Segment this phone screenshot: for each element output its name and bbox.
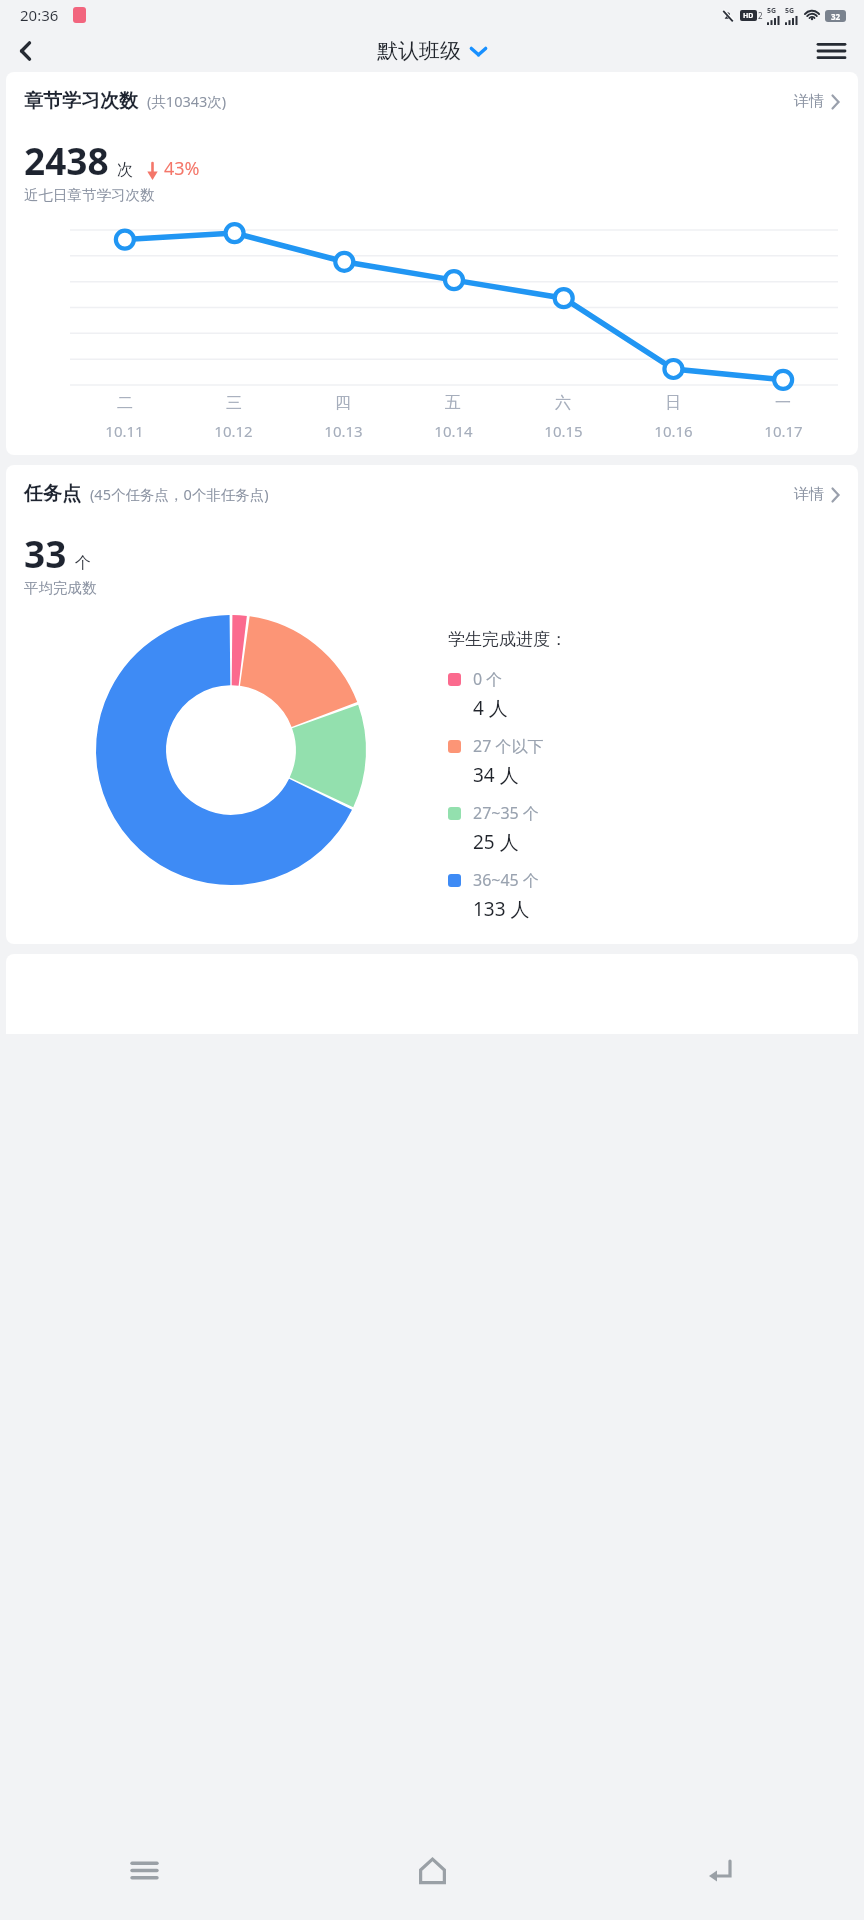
- staticText: 近七日章节学习次数: [24, 186, 155, 204]
- button[interactable]: 0 个: [448, 668, 508, 721]
- button[interactable]: Back: [4, 30, 48, 72]
- staticText: HD: [743, 11, 754, 21]
- staticText: 32: [831, 11, 841, 22]
- staticText: (45个任务点，0个非任务点): [90, 484, 269, 504]
- staticText: 一: [775, 393, 791, 413]
- button[interactable]: 详情: [794, 485, 840, 504]
- staticText: 六: [555, 393, 571, 413]
- staticText: 0 个: [473, 668, 503, 690]
- staticText: 2: [758, 10, 763, 21]
- staticText: 次: [117, 160, 133, 180]
- staticText: 34 人: [473, 762, 519, 788]
- staticText: 33: [24, 528, 67, 578]
- staticText: 4 人: [473, 695, 508, 721]
- staticText: 五: [445, 393, 461, 413]
- button[interactable]: 36~45 个: [448, 869, 539, 922]
- button[interactable]: Home: [288, 1820, 576, 1920]
- staticText: 10.11: [105, 421, 144, 441]
- staticText: 25 人: [473, 829, 519, 855]
- staticText: 36~45 个: [473, 869, 539, 891]
- staticText: 10.15: [544, 421, 583, 441]
- staticText: 日: [665, 393, 681, 413]
- staticText: 个: [75, 553, 91, 573]
- staticText: 5G: [785, 6, 795, 16]
- staticText: 三: [226, 393, 242, 413]
- button[interactable]: 27 个以下: [448, 735, 544, 788]
- button[interactable]: Back: [576, 1820, 864, 1920]
- staticText: 10.14: [434, 421, 473, 441]
- staticText: 20:36: [20, 5, 59, 25]
- staticText: 43%: [164, 156, 200, 181]
- staticText: 10.12: [214, 421, 253, 441]
- staticText: 默认班级: [377, 38, 461, 64]
- button[interactable]: 详情: [794, 92, 840, 111]
- button[interactable]: 27~35 个: [448, 802, 539, 855]
- staticText: 二: [117, 393, 133, 413]
- staticText: 章节学习次数: [24, 89, 138, 113]
- staticText: 5G: [767, 6, 777, 16]
- staticText: 详情: [794, 485, 824, 504]
- staticText: 10.13: [324, 421, 363, 441]
- staticText: 10.17: [764, 421, 803, 441]
- staticText: 四: [335, 393, 351, 413]
- staticText: 平均完成数: [24, 579, 97, 597]
- staticText: (共10343次): [147, 91, 227, 111]
- staticText: 详情: [794, 92, 824, 111]
- staticText: 学生完成进度：: [448, 629, 567, 650]
- staticText: 27~35 个: [473, 802, 539, 824]
- staticText: 2438: [24, 135, 109, 185]
- staticText: 任务点: [24, 482, 81, 506]
- button[interactable]: Menu: [808, 30, 854, 72]
- staticText: 10.16: [654, 421, 693, 441]
- button[interactable]: Recents: [0, 1820, 288, 1920]
- staticText: 27 个以下: [473, 735, 544, 757]
- button[interactable]: 默认班级: [377, 38, 487, 64]
- staticText: 133 人: [473, 896, 530, 922]
